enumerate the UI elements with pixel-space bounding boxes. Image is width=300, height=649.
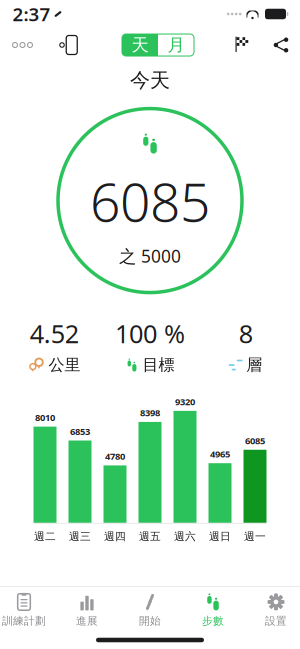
staticText: 2:37 (12, 2, 50, 26)
staticText: 進展 (76, 614, 98, 627)
button[interactable]: 月 (158, 34, 194, 56)
staticText: 之 5000 (119, 244, 181, 267)
staticText: 9320 (175, 395, 195, 408)
staticText: 設置 (265, 614, 287, 627)
button[interactable]: 天 (122, 34, 158, 56)
staticText: 週五 (139, 530, 161, 543)
button[interactable]: More options (6, 29, 38, 61)
staticText: 開始 (139, 614, 161, 627)
button[interactable]: Goals (231, 31, 256, 58)
staticText: 100 % (115, 317, 185, 350)
staticText: 月 (167, 34, 184, 56)
staticText: 週四 (104, 530, 126, 543)
staticText: 層 (246, 355, 262, 375)
staticText: 週六 (174, 530, 196, 543)
staticText: 週三 (69, 530, 91, 543)
staticText: 週一 (244, 530, 266, 543)
button[interactable]: Connected device (52, 29, 84, 61)
staticText: 6085 (245, 434, 265, 447)
staticText: 步數 (202, 614, 224, 627)
button[interactable]: 步數 (181, 586, 244, 631)
staticText: 週二 (34, 530, 56, 543)
staticText: 8 (239, 317, 253, 350)
staticText: 6853 (70, 425, 90, 437)
button[interactable]: 開始 (118, 586, 181, 631)
staticText: 6085 (90, 166, 210, 236)
staticText: 4780 (105, 450, 125, 462)
button[interactable]: 設置 (244, 586, 300, 631)
staticText: 目標 (142, 355, 174, 375)
button[interactable]: 訓練計劃 (0, 586, 55, 631)
staticText: 今天 (130, 68, 170, 93)
staticText: 公里 (48, 355, 80, 375)
staticText: 週日 (209, 530, 231, 543)
staticText: 訓練計劃 (2, 614, 46, 627)
staticText: 天 (131, 34, 148, 56)
staticText: 4965 (210, 448, 230, 460)
staticText: 4.52 (30, 317, 79, 350)
staticText: 8010 (35, 411, 55, 424)
staticText: 8398 (140, 406, 160, 419)
button[interactable]: Share (268, 31, 293, 58)
button[interactable]: 進展 (55, 586, 118, 631)
